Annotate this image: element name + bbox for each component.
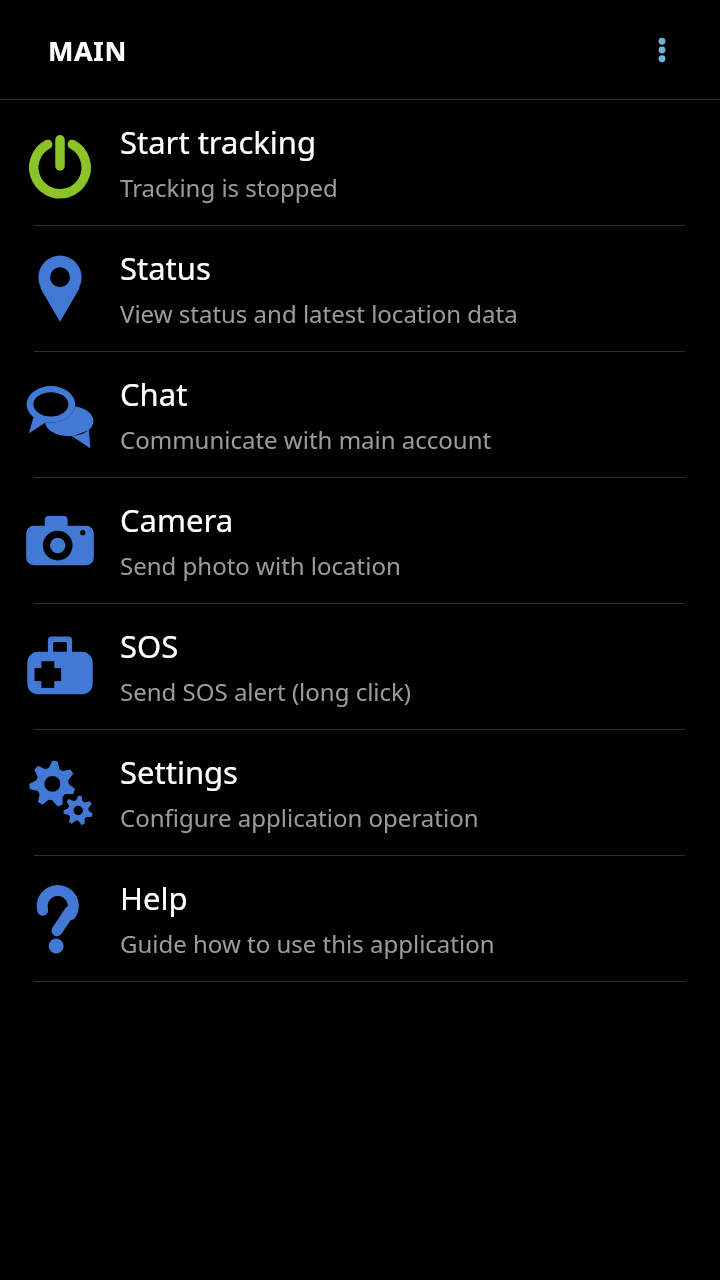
staticText: Send SOS alert (long click) xyxy=(120,675,412,708)
button[interactable]: More options xyxy=(638,26,686,74)
staticText: Camera xyxy=(120,499,234,541)
staticText: Start tracking xyxy=(120,121,317,163)
button[interactable]: Camera xyxy=(0,478,720,603)
staticText: Help xyxy=(120,877,188,919)
staticText: Send photo with location xyxy=(120,549,401,582)
staticText: Settings xyxy=(120,751,238,793)
button[interactable]: Chat xyxy=(0,352,720,477)
staticText: View status and latest location data xyxy=(120,297,518,330)
staticText: SOS xyxy=(120,625,179,667)
staticText: Guide how to use this application xyxy=(120,927,495,960)
staticText: Configure application operation xyxy=(120,801,479,834)
button[interactable]: SOS xyxy=(0,604,720,729)
staticText: MAIN xyxy=(48,32,127,69)
button[interactable]: Help xyxy=(0,856,720,981)
button[interactable]: Settings xyxy=(0,730,720,855)
staticText: Communicate with main account xyxy=(120,423,492,456)
button[interactable]: Status xyxy=(0,226,720,351)
staticText: Tracking is stopped xyxy=(120,171,338,204)
staticText: Chat xyxy=(120,373,188,415)
staticText: Status xyxy=(120,247,211,289)
button[interactable]: Start tracking xyxy=(0,100,720,225)
